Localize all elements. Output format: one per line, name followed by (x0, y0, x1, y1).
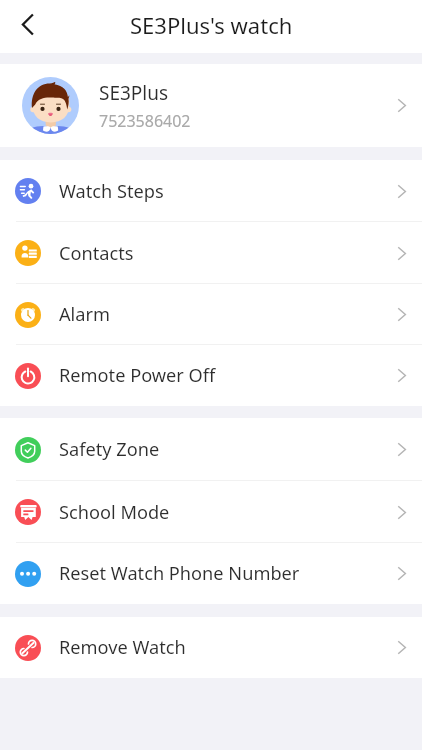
staticText: Alarm (59, 302, 111, 327)
staticText: Contacts (59, 241, 134, 266)
staticText: Remote Power Off (59, 363, 216, 388)
button[interactable]: Safety Zone (0, 418, 422, 481)
staticText: Safety Zone (59, 437, 160, 462)
staticText: School Mode (59, 500, 170, 525)
button[interactable]: Reset Watch Phone Number (0, 543, 422, 604)
button[interactable]: SE3Plus (0, 64, 422, 147)
button[interactable]: Alarm (0, 284, 422, 345)
staticText: Remove Watch (59, 635, 186, 660)
button[interactable]: Contacts (0, 222, 422, 284)
button[interactable]: Back (0, 0, 55, 53)
staticText: 7523586402 (99, 110, 191, 132)
button[interactable]: Remove Watch (0, 617, 422, 678)
button[interactable]: Remote Power Off (0, 345, 422, 406)
staticText: Watch Steps (59, 179, 164, 204)
button[interactable]: Watch Steps (0, 160, 422, 222)
button[interactable]: School Mode (0, 481, 422, 543)
staticText: SE3Plus's watch (130, 10, 293, 40)
staticText: SE3Plus (99, 80, 169, 106)
staticText: Reset Watch Phone Number (59, 561, 300, 586)
